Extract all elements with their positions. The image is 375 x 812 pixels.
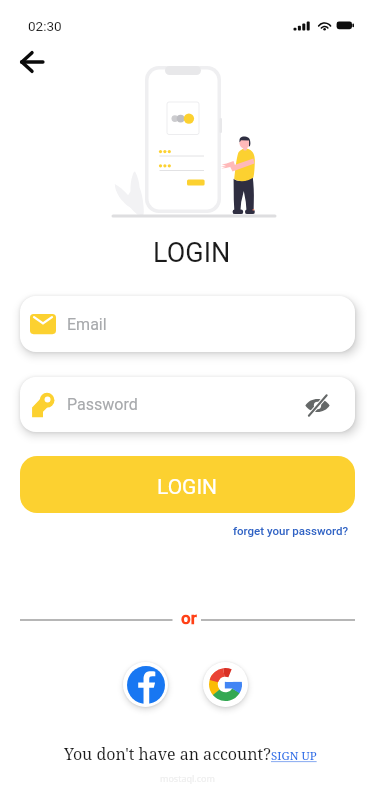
staticText: Email xyxy=(67,315,107,334)
button[interactable]: Email xyxy=(20,296,355,352)
staticText: 02:30 xyxy=(28,18,62,34)
button[interactable]: Password xyxy=(20,377,355,432)
staticText: LOGIN xyxy=(157,475,218,500)
staticText: or xyxy=(181,608,197,626)
button[interactable]: SIGN UP xyxy=(271,748,317,764)
button[interactable]: Toggle password visibility xyxy=(301,389,333,421)
button[interactable]: forget your password? xyxy=(233,524,349,537)
button[interactable]: Sign in with Facebook xyxy=(123,662,168,707)
button[interactable]: Back xyxy=(13,43,51,81)
staticText: You don't have an account? xyxy=(64,743,271,765)
staticText: Password xyxy=(67,395,138,414)
button[interactable]: Sign in with Google xyxy=(203,662,248,707)
staticText: mostaql.com xyxy=(160,772,215,784)
button[interactable]: LOGIN xyxy=(20,456,355,513)
staticText: LOGIN xyxy=(153,237,231,269)
